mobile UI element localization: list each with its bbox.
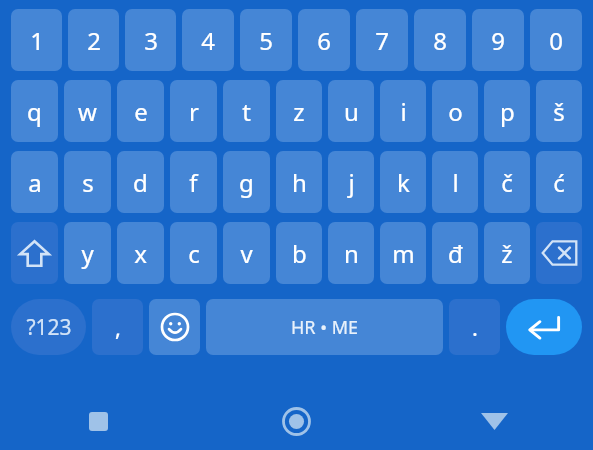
- staticText: a: [28, 166, 42, 199]
- button[interactable]: z: [276, 80, 322, 142]
- staticText: z: [293, 95, 305, 128]
- staticText: y: [81, 237, 94, 270]
- button[interactable]: x: [117, 222, 164, 284]
- button[interactable]: e: [117, 80, 164, 142]
- button[interactable]: Emoji: [149, 299, 200, 355]
- button[interactable]: đ: [432, 222, 478, 284]
- staticText: 2: [87, 24, 101, 57]
- button[interactable]: k: [380, 151, 426, 213]
- staticText: x: [134, 237, 147, 270]
- staticText: g: [239, 166, 254, 199]
- staticText: .: [472, 312, 478, 342]
- button[interactable]: v: [223, 222, 270, 284]
- button[interactable]: p: [484, 80, 530, 142]
- staticText: 8: [433, 24, 447, 57]
- button[interactable]: s: [64, 151, 111, 213]
- staticText: q: [27, 95, 42, 128]
- staticText: 1: [30, 24, 44, 57]
- button[interactable]: 8: [414, 9, 466, 71]
- staticText: s: [82, 166, 94, 199]
- staticText: e: [134, 95, 148, 128]
- button[interactable]: y: [64, 222, 111, 284]
- staticText: j: [348, 166, 355, 199]
- button[interactable]: Enter: [506, 299, 582, 355]
- button[interactable]: .: [449, 299, 500, 355]
- staticText: ?123: [26, 313, 72, 342]
- button[interactable]: 3: [125, 9, 176, 71]
- button[interactable]: ć: [536, 151, 582, 213]
- staticText: n: [344, 237, 359, 270]
- button[interactable]: 9: [472, 9, 524, 71]
- staticText: 4: [201, 24, 215, 57]
- staticText: f: [189, 166, 198, 199]
- staticText: č: [501, 166, 513, 199]
- staticText: d: [133, 166, 148, 199]
- staticText: ć: [553, 166, 565, 199]
- staticText: w: [78, 95, 97, 128]
- button[interactable]: ž: [484, 222, 530, 284]
- button[interactable]: m: [380, 222, 426, 284]
- button[interactable]: HR • ME: [206, 299, 443, 355]
- button[interactable]: b: [276, 222, 322, 284]
- button[interactable]: h: [276, 151, 322, 213]
- staticText: ,: [115, 312, 121, 342]
- staticText: HR • ME: [291, 315, 358, 340]
- staticText: v: [240, 237, 253, 270]
- button[interactable]: d: [117, 151, 164, 213]
- button[interactable]: r: [170, 80, 217, 142]
- button[interactable]: 1: [11, 9, 62, 71]
- staticText: đ: [448, 237, 463, 270]
- button[interactable]: 5: [240, 9, 292, 71]
- button[interactable]: t: [223, 80, 270, 142]
- staticText: o: [448, 95, 463, 128]
- button[interactable]: č: [484, 151, 530, 213]
- staticText: u: [344, 95, 359, 128]
- button[interactable]: c: [170, 222, 217, 284]
- button[interactable]: Backspace: [536, 222, 582, 284]
- staticText: ž: [501, 237, 513, 270]
- button[interactable]: f: [170, 151, 217, 213]
- button[interactable]: Shift: [11, 222, 58, 284]
- staticText: r: [189, 95, 199, 128]
- staticText: m: [392, 237, 415, 270]
- staticText: k: [397, 166, 410, 199]
- staticText: p: [500, 95, 515, 128]
- button[interactable]: 7: [356, 9, 408, 71]
- button[interactable]: Recents: [0, 392, 197, 450]
- button[interactable]: ?123: [11, 299, 86, 355]
- staticText: b: [292, 237, 307, 270]
- button[interactable]: 6: [298, 9, 350, 71]
- staticText: 9: [491, 24, 505, 57]
- button[interactable]: ,: [92, 299, 143, 355]
- staticText: 7: [375, 24, 389, 57]
- button[interactable]: 4: [182, 9, 234, 71]
- button[interactable]: š: [536, 80, 582, 142]
- staticText: c: [188, 237, 200, 270]
- button[interactable]: w: [64, 80, 111, 142]
- staticText: t: [242, 95, 251, 128]
- staticText: i: [400, 95, 407, 128]
- button[interactable]: 2: [68, 9, 119, 71]
- button[interactable]: Home: [197, 392, 395, 450]
- button[interactable]: a: [11, 151, 58, 213]
- button[interactable]: u: [328, 80, 374, 142]
- button[interactable]: q: [11, 80, 58, 142]
- staticText: 3: [144, 24, 158, 57]
- button[interactable]: n: [328, 222, 374, 284]
- button[interactable]: g: [223, 151, 270, 213]
- button[interactable]: o: [432, 80, 478, 142]
- staticText: l: [452, 166, 459, 199]
- staticText: h: [292, 166, 307, 199]
- button[interactable]: Hide keyboard: [395, 392, 593, 450]
- button[interactable]: j: [328, 151, 374, 213]
- button[interactable]: l: [432, 151, 478, 213]
- button[interactable]: 0: [530, 9, 582, 71]
- staticText: š: [553, 95, 565, 128]
- staticText: 0: [549, 24, 563, 57]
- staticText: 6: [317, 24, 331, 57]
- button[interactable]: i: [380, 80, 426, 142]
- staticText: 5: [259, 24, 273, 57]
